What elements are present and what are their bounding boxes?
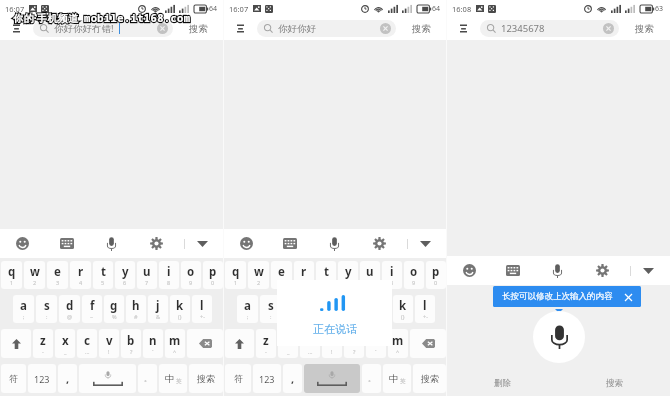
button[interactable]: e bbox=[271, 261, 292, 289]
button[interactable]: , bbox=[283, 364, 302, 393]
button[interactable]: Menu bbox=[224, 17, 257, 40]
button[interactable]: 中 bbox=[159, 364, 187, 393]
button[interactable]: Menu bbox=[447, 17, 480, 40]
button[interactable]: z bbox=[33, 329, 53, 358]
button[interactable]: b bbox=[344, 329, 364, 358]
button[interactable]: w bbox=[248, 261, 269, 289]
button[interactable]: j bbox=[148, 295, 168, 323]
button[interactable]: b bbox=[121, 329, 141, 358]
button[interactable]: Keyboard layout bbox=[268, 229, 312, 258]
button[interactable]: 。 bbox=[138, 364, 157, 393]
button[interactable]: v bbox=[99, 329, 119, 358]
button[interactable]: 中 bbox=[383, 364, 411, 393]
button[interactable]: 搜索 bbox=[558, 370, 670, 396]
button[interactable]: p bbox=[203, 261, 223, 289]
button[interactable]: Keyboard layout bbox=[491, 256, 535, 285]
button[interactable]: n bbox=[143, 329, 163, 358]
button[interactable]: Voice input bbox=[312, 229, 357, 258]
button[interactable]: z bbox=[256, 329, 276, 358]
button[interactable]: x bbox=[55, 329, 75, 358]
button[interactable]: 搜索 bbox=[413, 364, 446, 393]
button[interactable]: w bbox=[24, 261, 45, 289]
button[interactable]: a bbox=[13, 295, 34, 323]
button[interactable]: Emoji bbox=[224, 229, 268, 258]
button[interactable] bbox=[1, 329, 31, 358]
button[interactable]: Clear text bbox=[157, 23, 168, 34]
button[interactable]: c bbox=[300, 329, 320, 358]
button[interactable]: Settings bbox=[357, 229, 402, 258]
button[interactable]: f bbox=[305, 295, 325, 323]
button[interactable] bbox=[187, 329, 223, 358]
button[interactable]: q bbox=[1, 261, 22, 289]
button[interactable]: l bbox=[192, 295, 212, 323]
button[interactable]: i bbox=[382, 261, 402, 289]
button[interactable]: u bbox=[360, 261, 380, 289]
button[interactable]: 符 bbox=[225, 364, 251, 393]
button[interactable]: Clear text bbox=[380, 23, 391, 34]
button[interactable]: Clear text bbox=[603, 23, 614, 34]
button[interactable]: g bbox=[327, 295, 347, 323]
button[interactable]: t bbox=[316, 261, 336, 289]
button[interactable]: y bbox=[115, 261, 135, 289]
button[interactable]: m bbox=[165, 329, 185, 358]
button[interactable]: 搜索 bbox=[396, 17, 447, 40]
button[interactable]: y bbox=[338, 261, 358, 289]
button[interactable]: 123 bbox=[28, 364, 56, 393]
button[interactable]: Close tip bbox=[623, 292, 633, 302]
button[interactable]: Voice input bbox=[535, 256, 580, 285]
button[interactable]: c bbox=[77, 329, 97, 358]
button[interactable]: i bbox=[159, 261, 179, 289]
button[interactable]: h bbox=[126, 295, 146, 323]
button[interactable]: 符 bbox=[1, 364, 26, 393]
button[interactable]: a bbox=[237, 295, 258, 323]
button[interactable]: s bbox=[36, 295, 57, 323]
button[interactable]: e bbox=[47, 261, 68, 289]
button[interactable]: 搜索 bbox=[173, 17, 224, 40]
button[interactable]: 。 bbox=[362, 364, 381, 393]
button[interactable]: Settings bbox=[134, 229, 179, 258]
button[interactable]: r bbox=[294, 261, 314, 289]
button[interactable]: Settings bbox=[580, 256, 625, 285]
button[interactable]: 12345678 bbox=[480, 20, 619, 37]
button[interactable] bbox=[304, 364, 360, 393]
button[interactable]: v bbox=[322, 329, 342, 358]
button[interactable]: p bbox=[426, 261, 446, 289]
button[interactable]: Hide keyboard bbox=[185, 229, 219, 258]
button[interactable]: 你好你好 bbox=[257, 20, 396, 37]
button[interactable]: Menu bbox=[0, 17, 33, 40]
button[interactable] bbox=[410, 329, 446, 358]
button[interactable]: s bbox=[260, 295, 281, 323]
button[interactable]: o bbox=[181, 261, 201, 289]
button[interactable]: 搜索 bbox=[189, 364, 223, 393]
button[interactable]: 删除 bbox=[447, 370, 558, 396]
button[interactable]: 搜索 bbox=[619, 17, 670, 40]
button[interactable]: 长按可以修改上次输入的内容 bbox=[493, 286, 641, 307]
button[interactable]: m bbox=[388, 329, 408, 358]
button[interactable]: Voice input bbox=[89, 229, 134, 258]
button[interactable]: t bbox=[93, 261, 113, 289]
button[interactable]: 你好你好冇错! bbox=[33, 20, 173, 37]
button[interactable]: Hide keyboard bbox=[631, 256, 665, 285]
button[interactable]: 123 bbox=[253, 364, 281, 393]
button[interactable]: r bbox=[70, 261, 91, 289]
button[interactable]: g bbox=[104, 295, 124, 323]
button[interactable]: Start voice recording bbox=[533, 311, 585, 363]
button[interactable]: Emoji bbox=[447, 256, 491, 285]
button[interactable]: k bbox=[393, 295, 413, 323]
button[interactable]: q bbox=[225, 261, 246, 289]
button[interactable]: o bbox=[404, 261, 424, 289]
button[interactable] bbox=[225, 329, 254, 358]
button[interactable]: k bbox=[170, 295, 190, 323]
button[interactable]: Hide keyboard bbox=[408, 229, 442, 258]
button[interactable]: Keyboard layout bbox=[44, 229, 89, 258]
button[interactable]: d bbox=[59, 295, 80, 323]
button[interactable] bbox=[79, 364, 136, 393]
button[interactable]: Emoji bbox=[0, 229, 44, 258]
button[interactable]: u bbox=[137, 261, 157, 289]
button[interactable]: , bbox=[58, 364, 77, 393]
